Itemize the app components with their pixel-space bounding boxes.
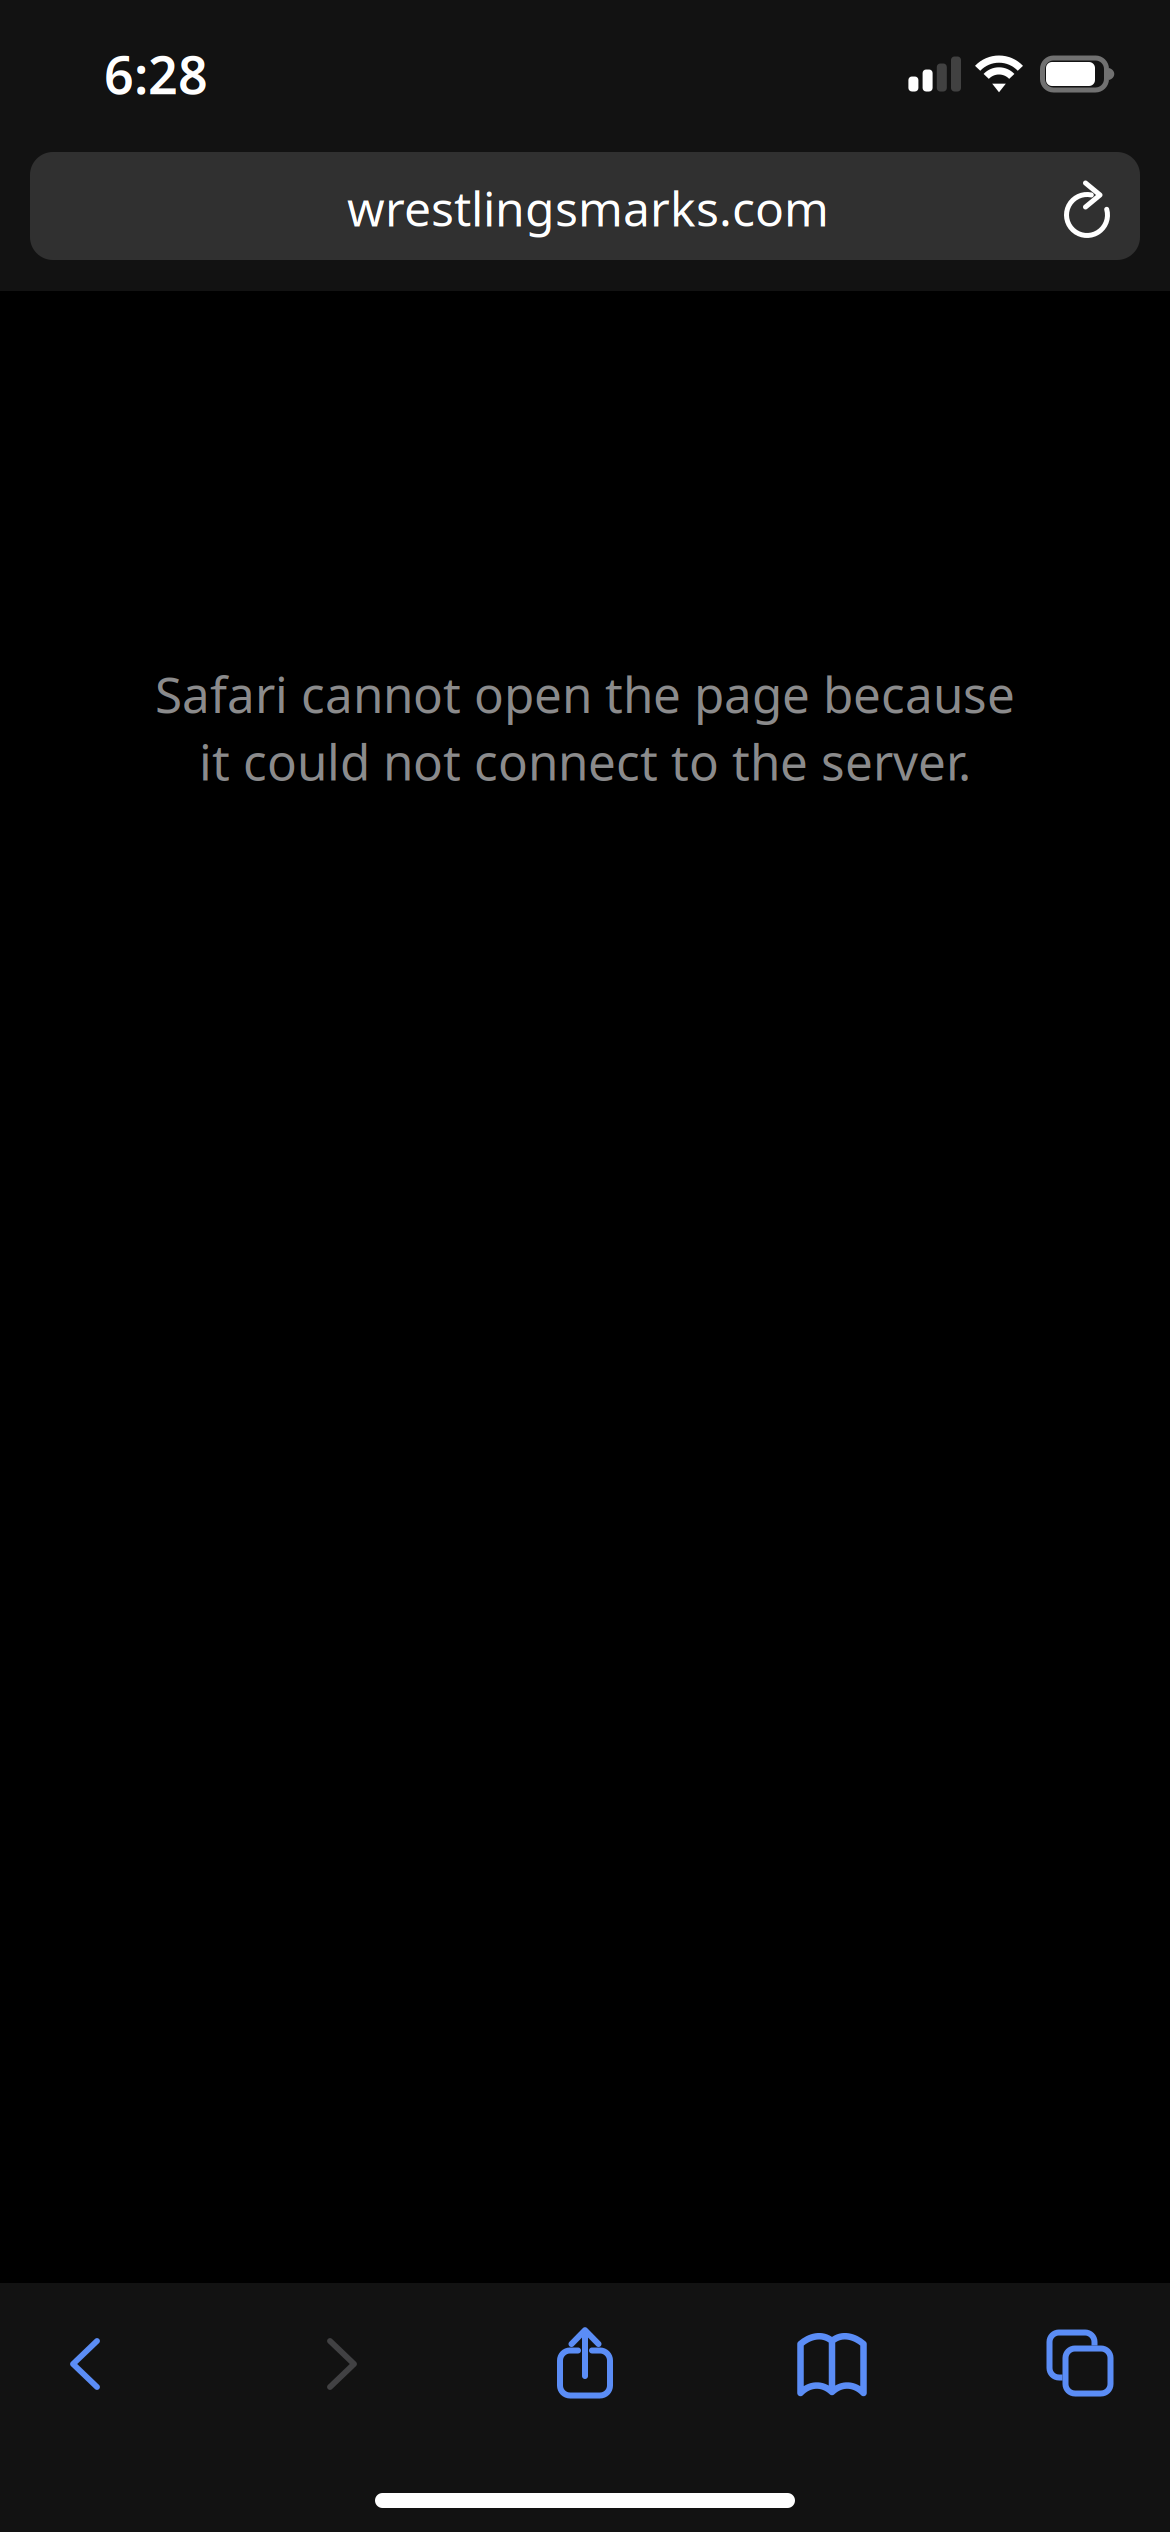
staticText: Safari cannot open the page because [155, 661, 1015, 726]
button[interactable]: Tabs [1015, 2283, 1145, 2443]
button[interactable]: Share [520, 2283, 650, 2443]
staticText: 6:28 [104, 39, 208, 109]
staticText: wrestlingsmarks.com [347, 176, 829, 240]
staticText: it could not connect to the server. [199, 728, 971, 794]
button[interactable]: Bookmarks [767, 2283, 897, 2443]
button[interactable]: Forward [277, 2283, 407, 2443]
button[interactable]: Reload [1045, 156, 1133, 256]
button[interactable]: wrestlingsmarks.com [30, 152, 1140, 260]
button[interactable]: Back [20, 2283, 150, 2443]
